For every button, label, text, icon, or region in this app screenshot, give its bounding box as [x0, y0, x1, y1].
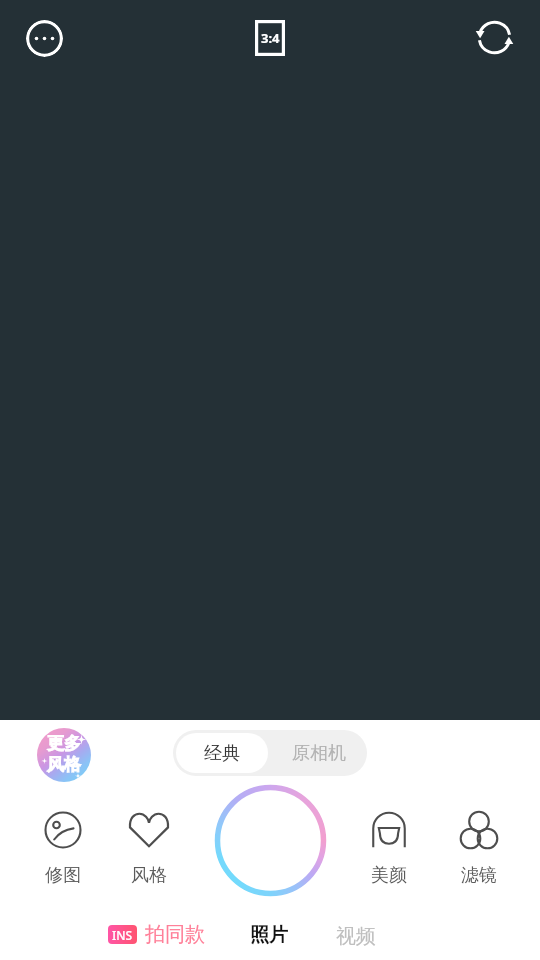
button[interactable]: 经典	[176, 733, 268, 773]
staticText: 更多	[47, 733, 81, 754]
staticText: 视频	[336, 924, 376, 949]
button[interactable]: More styles	[37, 728, 91, 782]
button[interactable]: INS	[104, 920, 209, 949]
staticText: 经典	[204, 742, 240, 765]
button[interactable]: Retouch	[28, 808, 98, 887]
staticText: 美颜	[371, 864, 407, 887]
staticText: 照片	[250, 923, 288, 947]
staticText: 原相机	[292, 742, 346, 765]
staticText: 风格	[131, 864, 167, 887]
staticText: 修图	[45, 864, 81, 887]
button[interactable]: Shutter	[214, 784, 327, 897]
staticText: INS	[112, 927, 133, 943]
staticText: 拍同款	[145, 922, 205, 947]
button[interactable]: Beauty	[354, 808, 424, 887]
staticText: 滤镜	[461, 864, 497, 887]
button[interactable]: 原相机	[271, 730, 367, 776]
button[interactable]: Style	[114, 808, 184, 887]
button[interactable]: 3:4	[253, 18, 287, 58]
button[interactable]: More options	[26, 20, 63, 57]
button[interactable]: 视频	[330, 921, 382, 952]
button[interactable]: Switch camera	[475, 18, 514, 57]
staticText: 风格	[47, 754, 81, 775]
button[interactable]: Filter	[444, 808, 514, 887]
staticText: 3:4	[261, 29, 280, 47]
button[interactable]: 照片	[244, 920, 294, 950]
